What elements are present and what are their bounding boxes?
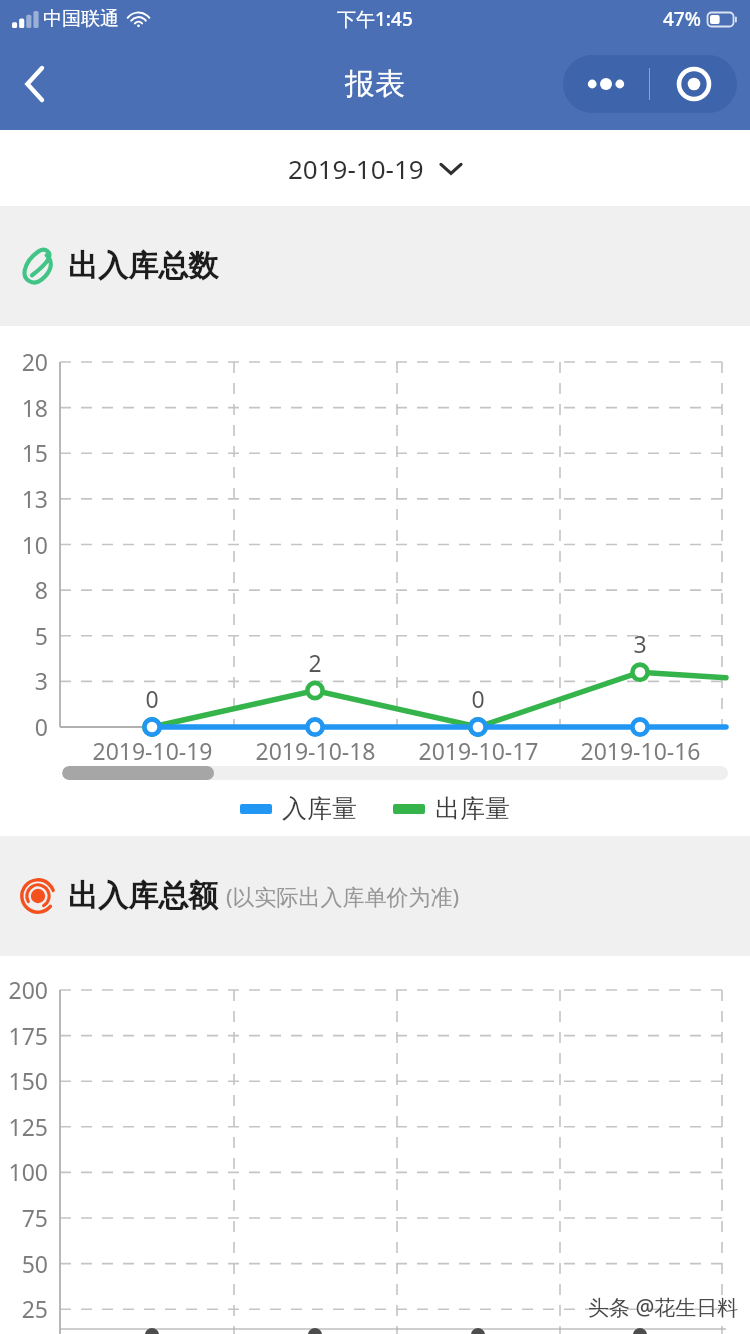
- staticText: 出入库总数: [68, 247, 218, 285]
- staticText: 出库量: [435, 793, 510, 824]
- staticText: 出入库总额: [68, 877, 218, 915]
- staticText: 75: [21, 1202, 48, 1233]
- staticText: 150: [8, 1065, 48, 1096]
- button[interactable]: 入库量: [236, 789, 361, 828]
- staticText: 2: [308, 647, 322, 678]
- staticText: 25: [21, 1293, 48, 1324]
- staticText: 下午1:45: [337, 6, 413, 32]
- staticText: 20: [21, 346, 48, 377]
- staticText: 0: [145, 683, 159, 714]
- staticText: 入库量: [282, 793, 357, 824]
- staticText: 125: [8, 1111, 48, 1142]
- button[interactable]: 2019-10-19: [272, 143, 478, 194]
- staticText: 10: [21, 529, 48, 560]
- staticText: 0: [471, 683, 485, 714]
- staticText: 2019-10-16: [580, 735, 701, 766]
- staticText: 13: [21, 483, 48, 514]
- staticText: 175: [8, 1020, 48, 1051]
- staticText: 200: [8, 974, 48, 1005]
- staticText: 3: [34, 665, 48, 696]
- staticText: 2019-10-19: [288, 151, 424, 186]
- staticText: 2019-10-17: [418, 735, 539, 766]
- button[interactable]: Back: [6, 55, 64, 113]
- staticText: (以实际出入库单价为准): [226, 881, 460, 911]
- staticText: 18: [21, 392, 48, 423]
- staticText: 报表: [345, 65, 405, 103]
- staticText: 15: [21, 437, 48, 468]
- staticText: 2019-10-18: [255, 735, 376, 766]
- staticText: 0: [34, 711, 48, 742]
- staticText: 50: [21, 1248, 48, 1279]
- button[interactable]: 出库量: [389, 789, 514, 828]
- staticText: 5: [34, 620, 48, 651]
- staticText: 47%: [663, 6, 701, 32]
- button[interactable]: Mini program menu: [563, 55, 737, 113]
- staticText: 3: [633, 628, 647, 659]
- staticText: 100: [8, 1156, 48, 1187]
- staticText: 头条 @花生日料: [588, 1293, 739, 1322]
- staticText: 2019-10-19: [92, 735, 213, 766]
- staticText: 中国联通: [43, 7, 119, 31]
- staticText: 8: [34, 574, 48, 605]
